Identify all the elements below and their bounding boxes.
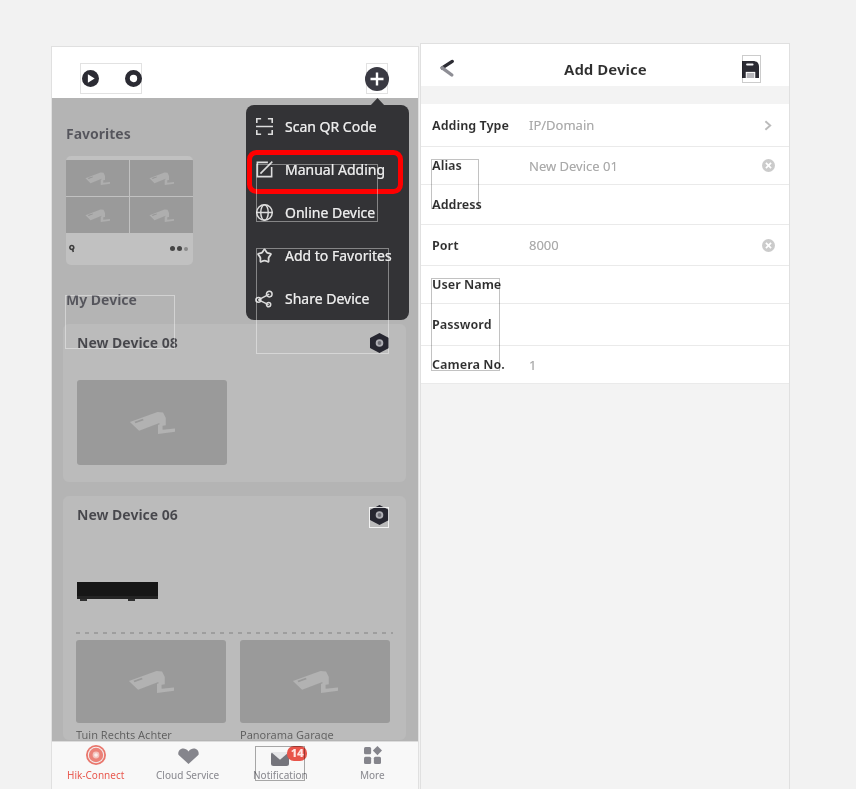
staticText: User Name [432, 276, 502, 293]
button[interactable]: Live view [82, 70, 99, 87]
staticText: Panorama Garage [240, 727, 334, 740]
staticText: New Device 01 [529, 157, 618, 175]
staticText: Online Device [285, 203, 376, 222]
button[interactable]: Add device [365, 67, 389, 91]
staticText: Camera No. [432, 356, 505, 373]
staticText: Favorites [66, 124, 131, 143]
button[interactable]: Password [421, 304, 789, 345]
staticText: Password [432, 316, 492, 333]
staticText: Manual Adding [285, 160, 386, 179]
staticText: Address [432, 196, 482, 213]
button[interactable]: More [327, 742, 417, 789]
button[interactable]: Device settings [370, 333, 389, 353]
button[interactable]: User Name [421, 266, 789, 303]
button[interactable]: Manual Adding [246, 148, 409, 191]
staticText: 1 [529, 356, 537, 374]
staticText: New Device 08 [77, 333, 178, 352]
button[interactable]: Port [421, 225, 789, 265]
staticText: Adding Type [432, 117, 509, 134]
button[interactable]: Cloud Service [143, 742, 233, 789]
button[interactable]: Alias [421, 147, 789, 184]
button[interactable]: Device settings [370, 505, 389, 525]
staticText: Cloud Service [156, 768, 220, 782]
button[interactable]: Address [421, 185, 789, 224]
staticText: My Device [66, 290, 137, 309]
staticText: Alias [432, 157, 462, 174]
staticText: IP/Domain [529, 116, 595, 134]
button[interactable]: 14 [235, 742, 325, 789]
button[interactable]: New Device 08 [63, 324, 406, 482]
staticText: Notification [253, 768, 308, 782]
button[interactable]: Online Device [246, 191, 409, 234]
button[interactable]: Playback [125, 70, 142, 87]
button[interactable]: Hik-Connect [51, 742, 141, 789]
button[interactable]: Camera No. [421, 346, 789, 383]
button[interactable]: Add to Favorites [246, 234, 409, 277]
staticText: Hik-Connect [67, 768, 125, 782]
staticText: Scan QR Code [285, 117, 377, 136]
staticText: More [360, 768, 385, 782]
button[interactable]: Share Device [246, 277, 409, 320]
button[interactable]: Save [742, 61, 759, 78]
staticText: New Device 06 [77, 505, 178, 524]
staticText: Tuin Rechts Achter [76, 727, 172, 740]
button[interactable]: Back [435, 55, 459, 78]
button[interactable]: Adding Type [421, 104, 789, 146]
staticText: Port [432, 237, 459, 254]
staticText: Add to Favorites [285, 246, 392, 265]
staticText: 14 [291, 746, 304, 760]
button[interactable] [66, 156, 193, 265]
staticText: 8000 [529, 236, 559, 254]
staticText: Add Device [564, 59, 647, 79]
button[interactable]: Scan QR Code [246, 105, 409, 148]
staticText: Share Device [285, 289, 370, 308]
button[interactable]: New Device 06 [63, 496, 406, 740]
